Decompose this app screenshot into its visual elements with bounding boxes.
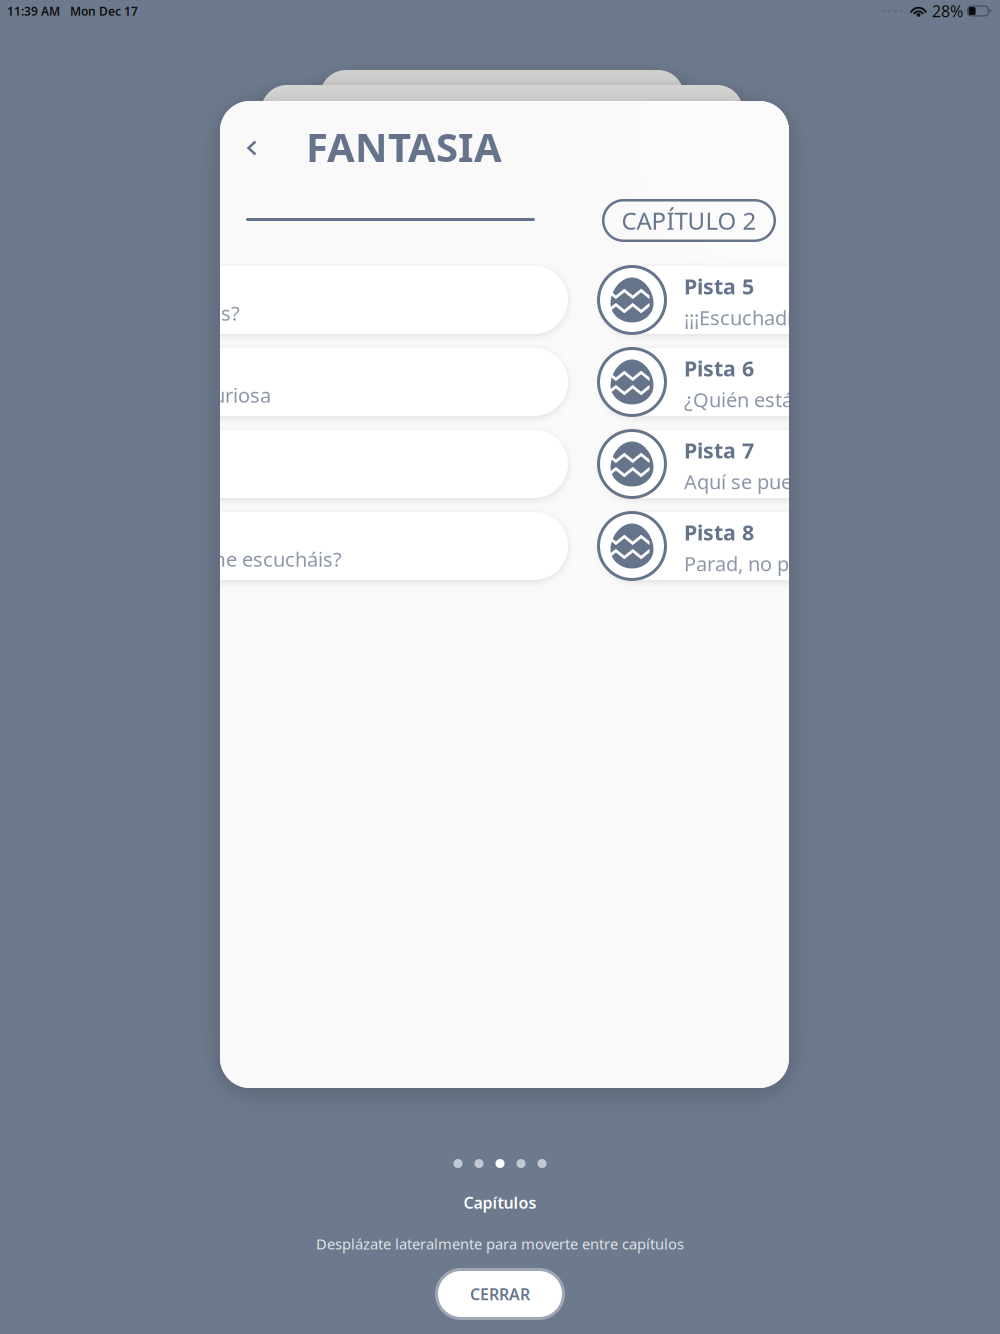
staticText: ¡¡¡Escuchadme!!! <box>684 304 832 331</box>
button[interactable]: Pista 5 <box>597 265 1000 335</box>
staticText: Desplázate lateralmente para moverte ent… <box>316 1234 684 1253</box>
staticText: ¿Quién está ahí? <box>684 386 835 413</box>
staticText: Aquí se puede <box>684 468 815 495</box>
staticText: Capítulos <box>463 1192 536 1213</box>
button[interactable]: Pista 6 <box>597 347 1000 417</box>
staticText: me escucháis? <box>207 546 342 572</box>
button[interactable]: me escucháis? <box>135 511 568 581</box>
staticText: Pista 7 <box>684 436 754 464</box>
staticText: 11:39 AM <box>7 3 60 19</box>
button[interactable]: Back <box>229 126 273 170</box>
button[interactable]: CAPÍTULO 2 <box>602 199 776 242</box>
button[interactable]: Pista 8 <box>597 511 1000 581</box>
button[interactable]: uriosa <box>135 347 568 417</box>
staticText: FANTASIA <box>306 120 502 173</box>
staticText: 28% <box>932 0 963 22</box>
staticText: os? <box>209 300 240 326</box>
button[interactable] <box>135 429 568 499</box>
staticText: Pista 8 <box>684 518 754 546</box>
staticText: Mon Dec 17 <box>70 3 138 19</box>
button[interactable]: CERRAR <box>435 1268 565 1320</box>
button[interactable]: Pista 7 <box>597 429 1000 499</box>
staticText: Parad, no paréis <box>684 550 834 577</box>
staticText: uriosa <box>213 382 271 408</box>
staticText: CERRAR <box>470 1283 530 1305</box>
button[interactable]: os? <box>135 265 568 335</box>
staticText: Pista 6 <box>684 354 754 382</box>
staticText: CAPÍTULO 2 <box>621 205 756 236</box>
staticText: Pista 5 <box>684 272 754 300</box>
